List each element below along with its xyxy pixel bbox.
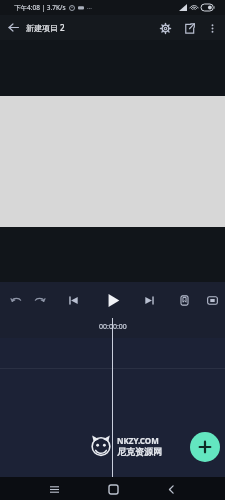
- button[interactable]: Home: [103, 479, 123, 499]
- button[interactable]: Recents: [44, 479, 64, 499]
- button[interactable]: Add media: [190, 432, 220, 462]
- staticText: ···: [87, 4, 92, 12]
- button[interactable]: Marker: [174, 290, 194, 310]
- button[interactable]: Redo: [29, 290, 49, 310]
- button[interactable]: Skip to start: [63, 290, 83, 310]
- button[interactable]: More options: [201, 17, 223, 39]
- staticText: 00:00:00: [99, 322, 127, 332]
- button[interactable]: Export: [177, 16, 201, 40]
- staticText: NKZY.COM: [117, 435, 159, 446]
- button[interactable]: Full screen: [202, 290, 222, 310]
- staticText: 尼克资源网: [117, 446, 162, 457]
- staticText: 下午4:08 | 3.7K/s: [14, 3, 66, 12]
- button[interactable]: Skip to end: [139, 290, 159, 310]
- button[interactable]: Settings: [153, 16, 177, 40]
- button[interactable]: Undo: [6, 290, 26, 310]
- button[interactable]: Play: [102, 289, 124, 311]
- button[interactable]: Back: [0, 15, 26, 40]
- button[interactable]: Back: [161, 479, 181, 499]
- staticText: 新建项目 2: [26, 22, 65, 33]
